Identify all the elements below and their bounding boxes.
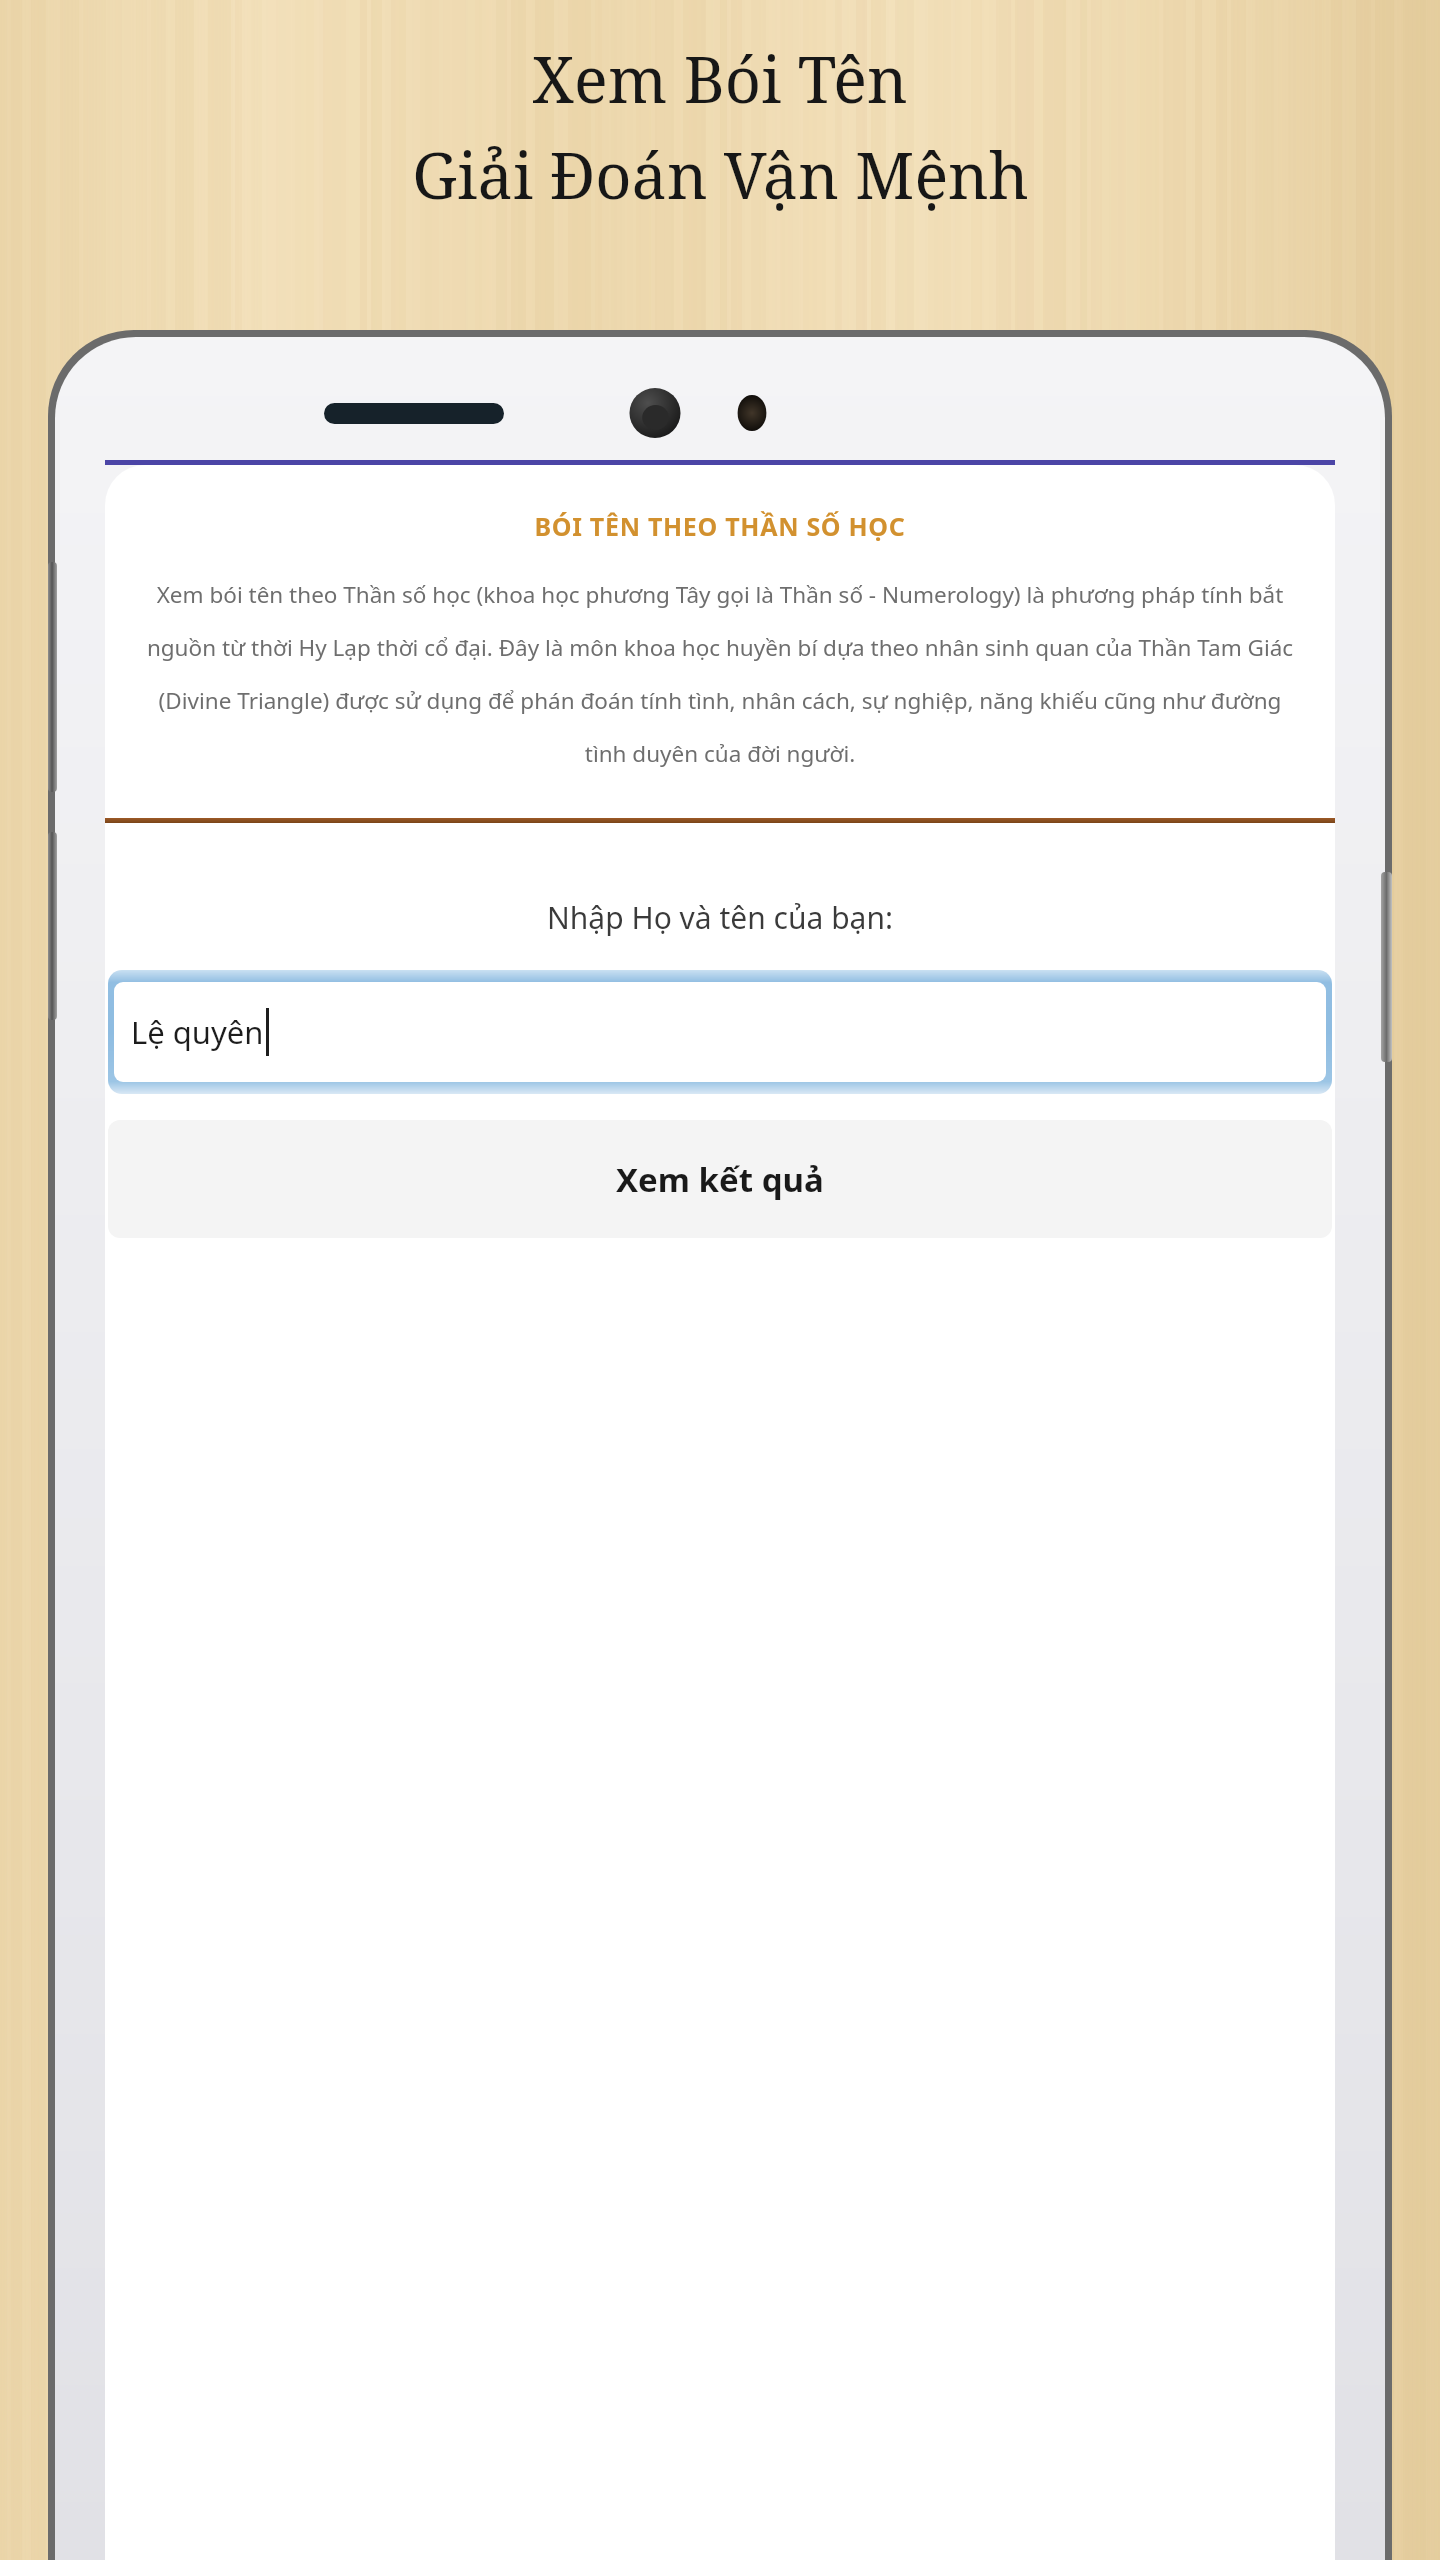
- staticText: Xem Bói Tên: [532, 36, 908, 122]
- staticText: Giải Đoán Vận Mệnh: [412, 132, 1029, 218]
- button[interactable]: Volume: [48, 562, 57, 792]
- button[interactable]: Xem kết quả: [108, 1120, 1332, 1238]
- staticText: Xem kết quả: [616, 1157, 824, 1202]
- staticText: BÓI TÊN THEO THẦN SỐ HỌC: [105, 509, 1335, 543]
- button[interactable]: Lệ quyên: [108, 970, 1332, 1094]
- staticText: Nhập Họ và tên của bạn:: [105, 897, 1335, 938]
- staticText: Lệ quyên: [131, 1011, 264, 1053]
- staticText: Xem bói tên theo Thần số học (khoa học p…: [135, 579, 1305, 768]
- button[interactable]: Assistant: [48, 832, 57, 1020]
- button[interactable]: Power: [1381, 872, 1392, 1062]
